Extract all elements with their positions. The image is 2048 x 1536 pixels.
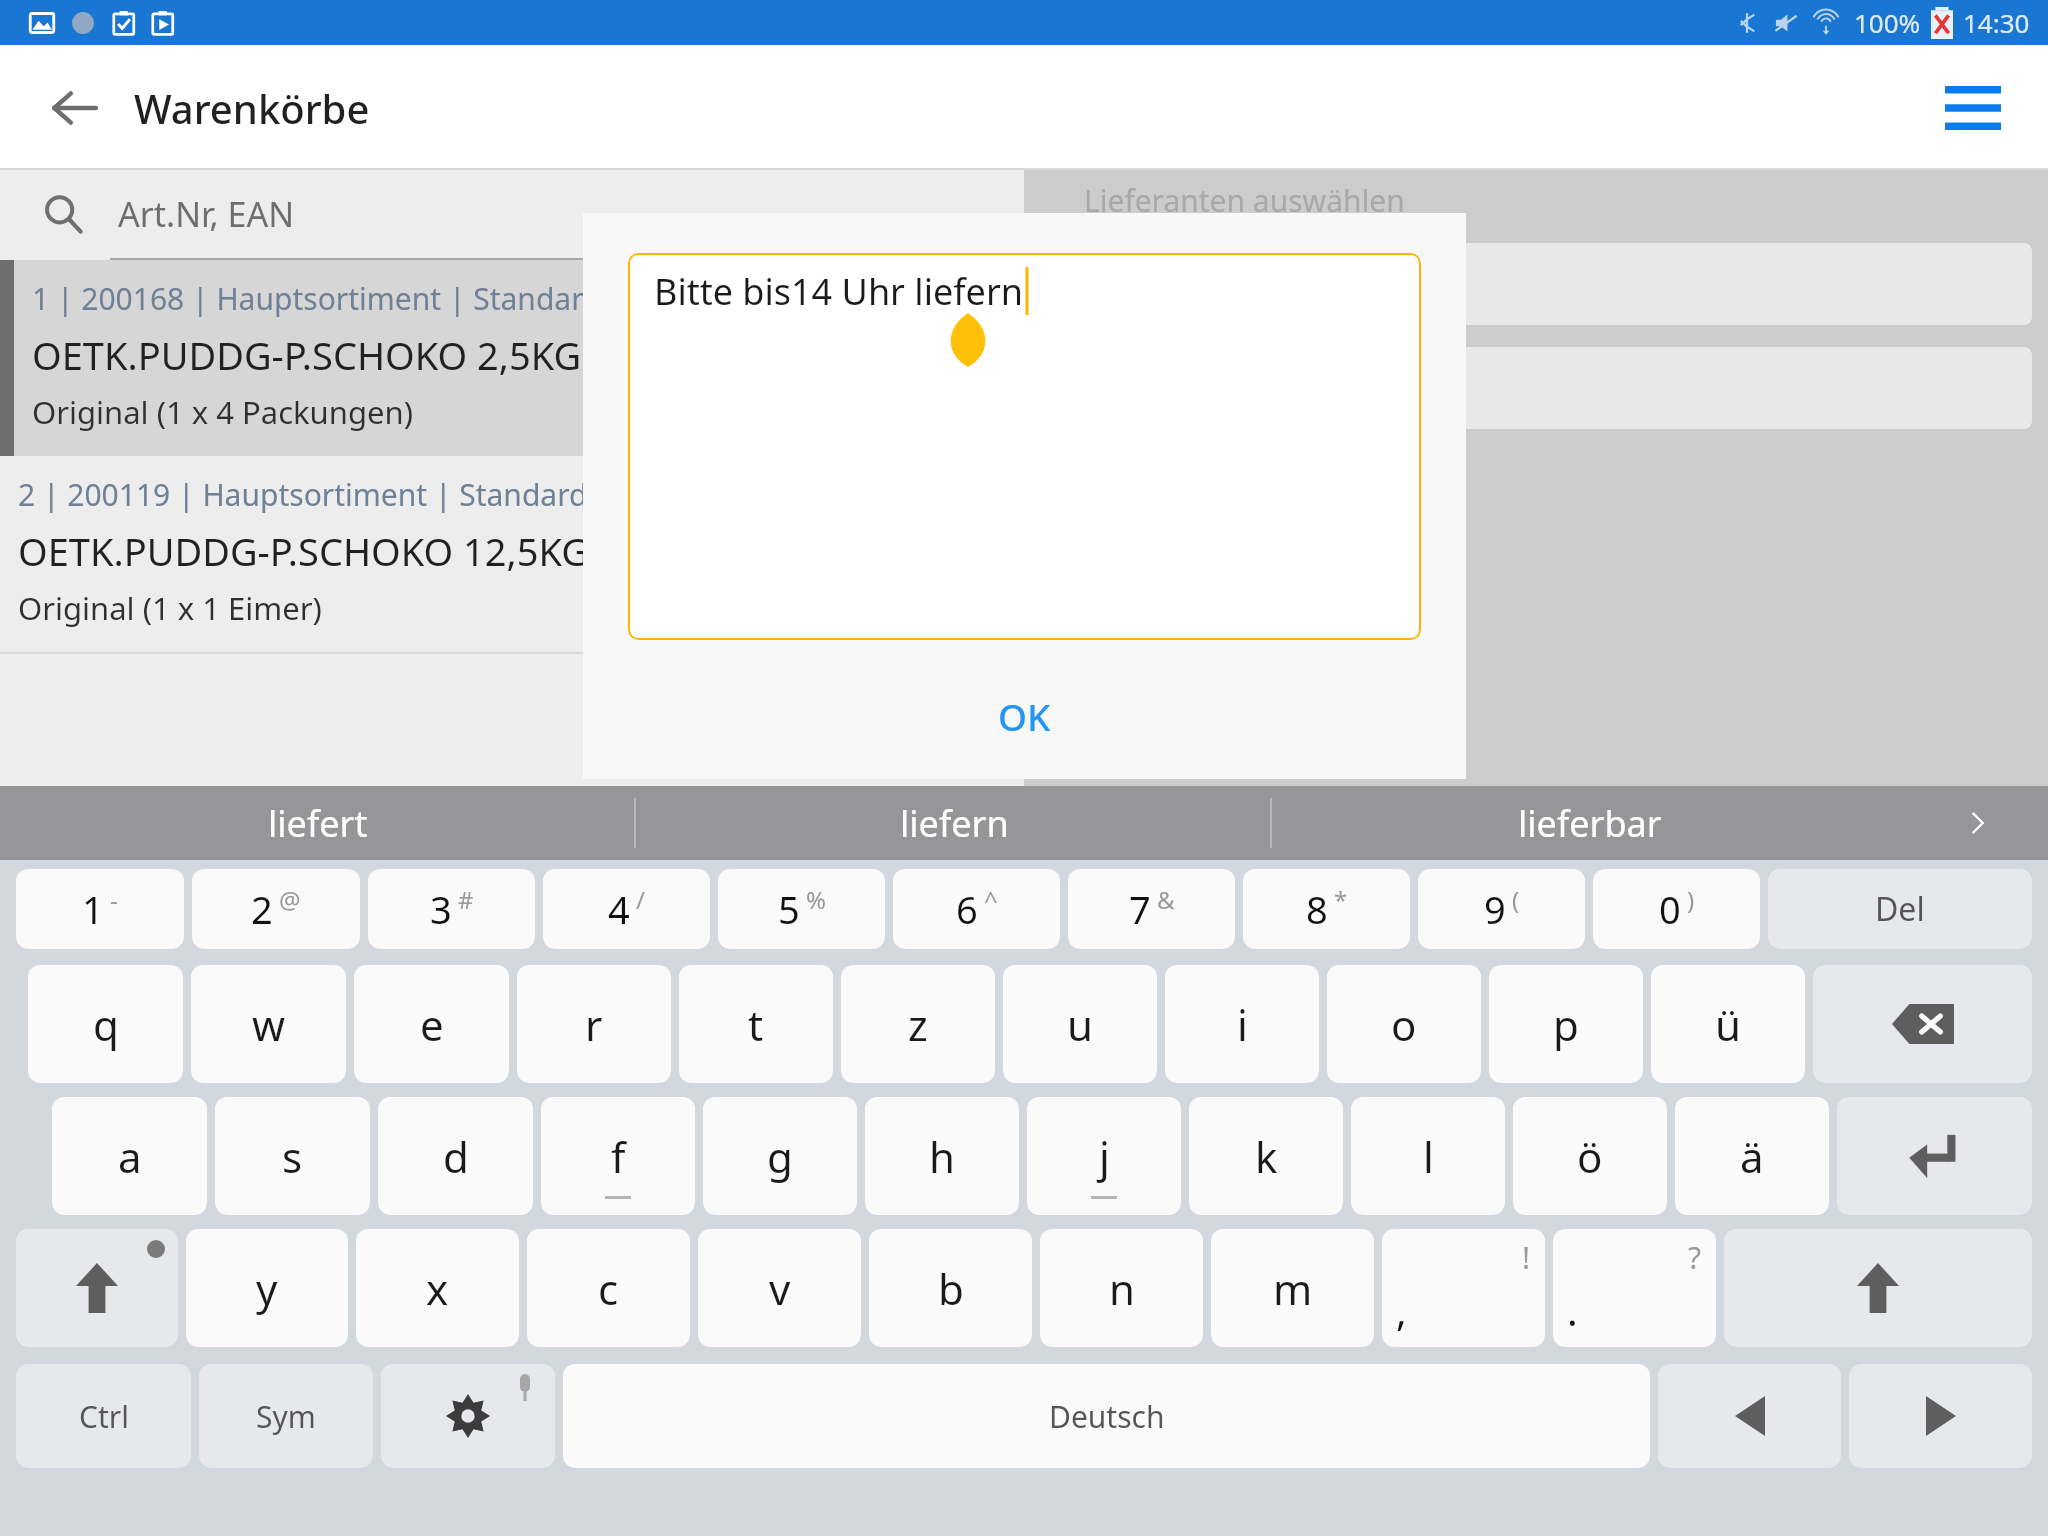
staticText: r: [585, 996, 603, 1053]
button[interactable]: Ihr Lieblingslieferant: [1040, 243, 2032, 325]
button[interactable]: Enter: [1837, 1097, 2032, 1215]
button[interactable]: 3: [368, 869, 535, 949]
button[interactable]: w: [191, 965, 346, 1083]
button[interactable]: i: [1165, 965, 1319, 1083]
button[interactable]: More suggestions: [1908, 786, 2048, 860]
button[interactable]: Ctrl: [16, 1364, 191, 1468]
button[interactable]: Shift: [16, 1229, 178, 1347]
button[interactable]: 1: [16, 869, 184, 949]
button[interactable]: g: [703, 1097, 857, 1215]
button[interactable]: r: [517, 965, 671, 1083]
button[interactable]: !: [1382, 1229, 1545, 1347]
button[interactable]: 9: [1418, 869, 1585, 949]
staticText: t: [748, 996, 764, 1053]
button[interactable]: Deutsch: [563, 1364, 1650, 1468]
button[interactable]: 2: [192, 869, 360, 949]
button[interactable]: ?: [1553, 1229, 1716, 1347]
staticText: 1 | 200168 | Hauptsortiment | Standardso…: [32, 278, 740, 319]
button[interactable]: v: [698, 1229, 861, 1347]
staticText: 7: [1129, 883, 1151, 935]
staticText: OETK.PUDDG-P.SCHOKO 12,5KG: [18, 525, 589, 577]
staticText: 0: [1659, 883, 1681, 935]
button[interactable]: ü: [1651, 965, 1805, 1083]
staticText: Ctrl: [79, 1396, 129, 1437]
button[interactable]: q: [28, 965, 183, 1083]
button[interactable]: lieferbar: [1272, 786, 1908, 860]
button[interactable]: 4: [543, 869, 710, 949]
staticText: Bitte bis14 Uhr liefern: [654, 267, 1024, 316]
staticText: c: [598, 1260, 619, 1317]
button[interactable]: 5: [718, 869, 885, 949]
staticText: n: [1109, 1260, 1135, 1317]
button[interactable]: fünf 1234567890): [1040, 347, 2032, 429]
staticText: ö: [1577, 1128, 1603, 1185]
button[interactable]: liefern: [636, 786, 1272, 860]
staticText: 14:30: [1963, 5, 2030, 40]
button[interactable]: h: [865, 1097, 1019, 1215]
staticText: ): [1687, 883, 1695, 916]
button[interactable]: Backspace: [1813, 965, 2032, 1083]
button[interactable]: 8: [1243, 869, 1410, 949]
button[interactable]: OK: [964, 679, 1085, 753]
staticText: liefern: [900, 799, 1009, 848]
staticText: l: [1423, 1128, 1434, 1185]
staticText: Original (1 x 4 Packungen): [32, 391, 413, 433]
staticText: Sym: [256, 1396, 316, 1437]
button[interactable]: z: [841, 965, 995, 1083]
button[interactable]: Shift: [1724, 1229, 2032, 1347]
staticText: .: [1567, 1283, 1578, 1337]
button[interactable]: u: [1003, 965, 1157, 1083]
button[interactable]: e: [354, 965, 509, 1083]
button[interactable]: liefert: [0, 786, 636, 860]
button[interactable]: Bitte bis14 Uhr liefern: [628, 253, 1421, 640]
button[interactable]: ö: [1513, 1097, 1667, 1215]
staticText: s: [282, 1128, 303, 1185]
staticText: OETK.PUDDG-P.SCHOKO 2,5KG: [32, 329, 582, 381]
button[interactable]: Settings: [381, 1364, 555, 1468]
button[interactable]: s: [215, 1097, 370, 1215]
staticText: 2: [251, 883, 273, 935]
staticText: ^: [984, 883, 998, 916]
button[interactable]: n: [1040, 1229, 1203, 1347]
staticText: #: [458, 883, 474, 916]
button[interactable]: l: [1351, 1097, 1505, 1215]
button[interactable]: Cursor left: [1658, 1364, 1841, 1468]
staticText: d: [443, 1128, 469, 1185]
button[interactable]: Sym: [199, 1364, 373, 1468]
button[interactable]: k: [1189, 1097, 1343, 1215]
button[interactable]: 1 | 200168 | Hauptsortiment | Standardso…: [0, 260, 1024, 456]
button[interactable]: 2 | 200119 | Hauptsortiment | Standardso…: [0, 456, 1024, 652]
staticText: 4: [608, 883, 630, 935]
button[interactable]: 7: [1068, 869, 1235, 949]
button[interactable]: x: [356, 1229, 519, 1347]
button[interactable]: p: [1489, 965, 1643, 1083]
button[interactable]: ä: [1675, 1097, 1829, 1215]
staticText: OK: [998, 691, 1051, 741]
staticText: v: [769, 1260, 791, 1317]
staticText: a: [118, 1128, 142, 1185]
staticText: h: [929, 1128, 955, 1185]
button[interactable]: Menu: [1934, 69, 2012, 147]
button[interactable]: b: [869, 1229, 1032, 1347]
button[interactable]: 0: [1593, 869, 1760, 949]
button[interactable]: d: [378, 1097, 533, 1215]
staticText: 2 | 200119 | Hauptsortiment | Standardso…: [18, 474, 726, 515]
staticText: b: [938, 1260, 964, 1317]
button[interactable]: a: [52, 1097, 207, 1215]
button[interactable]: Del: [1768, 869, 2032, 949]
button[interactable]: j: [1027, 1097, 1181, 1215]
button[interactable]: m: [1211, 1229, 1374, 1347]
button[interactable]: Cursor right: [1849, 1364, 2032, 1468]
button[interactable]: o: [1327, 965, 1481, 1083]
button[interactable]: c: [527, 1229, 690, 1347]
button[interactable]: t: [679, 965, 833, 1083]
button[interactable]: f: [541, 1097, 695, 1215]
button[interactable]: y: [186, 1229, 348, 1347]
staticText: y: [256, 1260, 278, 1317]
button[interactable]: 6: [893, 869, 1060, 949]
staticText: !: [1522, 1237, 1531, 1278]
button[interactable]: Back: [36, 70, 112, 146]
